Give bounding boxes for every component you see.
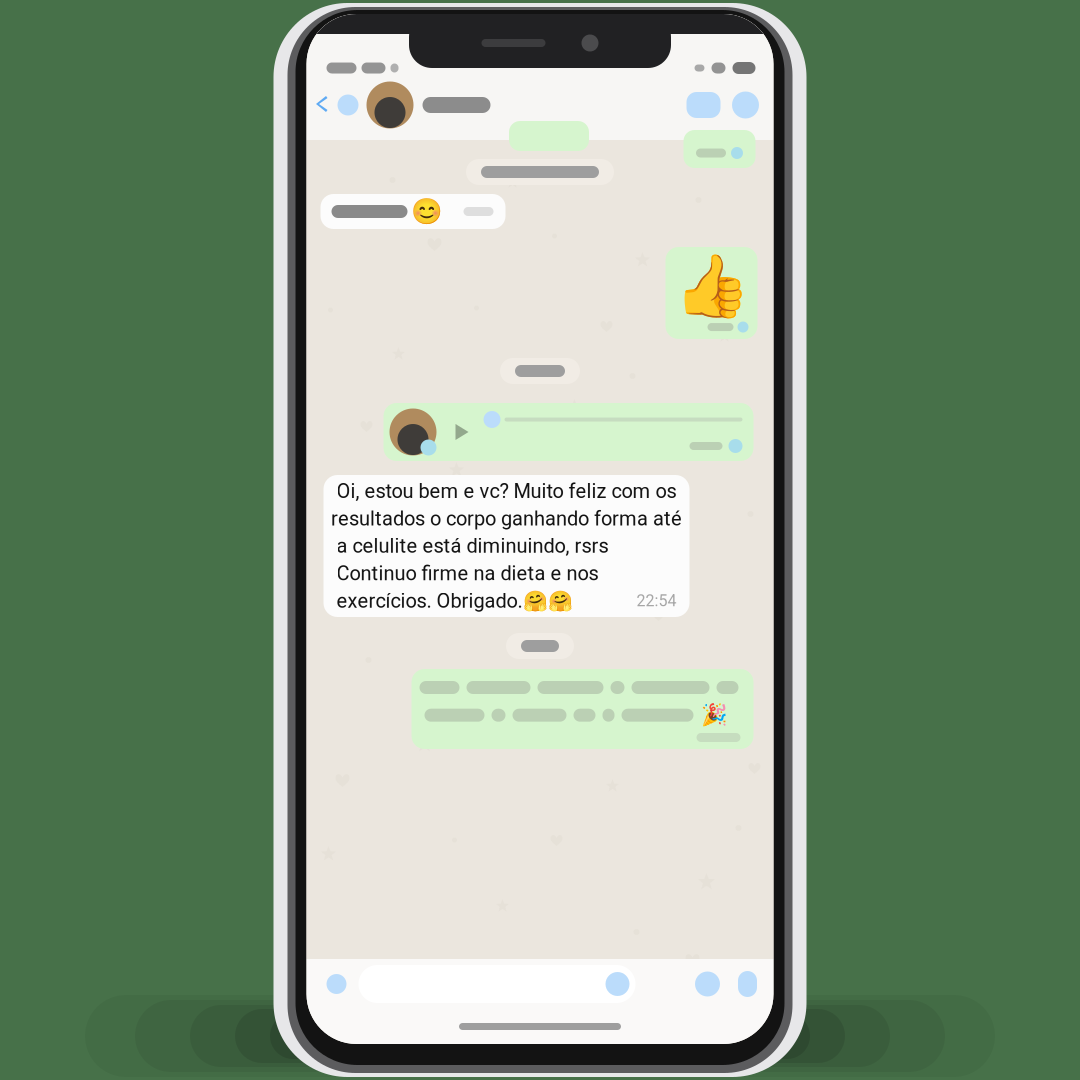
- button[interactable]: Stickers: [599, 965, 635, 1003]
- button[interactable]: Camera: [687, 959, 727, 1009]
- staticText: 😊: [410, 197, 442, 226]
- button[interactable]: Cliente contact info: [366, 76, 490, 134]
- staticText: 🎉: [700, 703, 727, 727]
- staticText: 👍: [673, 251, 749, 322]
- button[interactable]: Video call: [681, 76, 725, 134]
- button[interactable]: Record voice message: [727, 959, 767, 1009]
- button[interactable]: Voice call: [725, 76, 765, 134]
- staticText: resultados o corpo ganhando forma até: [331, 507, 682, 530]
- staticText: exercícios. Obrigado.🤗🤗: [336, 589, 572, 613]
- button[interactable]: Back to chats: [306, 76, 366, 134]
- staticText: Oi, estou bem e vc? Muito feliz com os: [336, 479, 676, 503]
- button[interactable]: Attach file: [314, 959, 358, 1009]
- staticText: 22:54: [636, 591, 676, 610]
- staticText: Continuo firme na dieta e nos: [336, 562, 598, 585]
- staticText: a celulite está diminuindo, rsrs: [336, 534, 608, 558]
